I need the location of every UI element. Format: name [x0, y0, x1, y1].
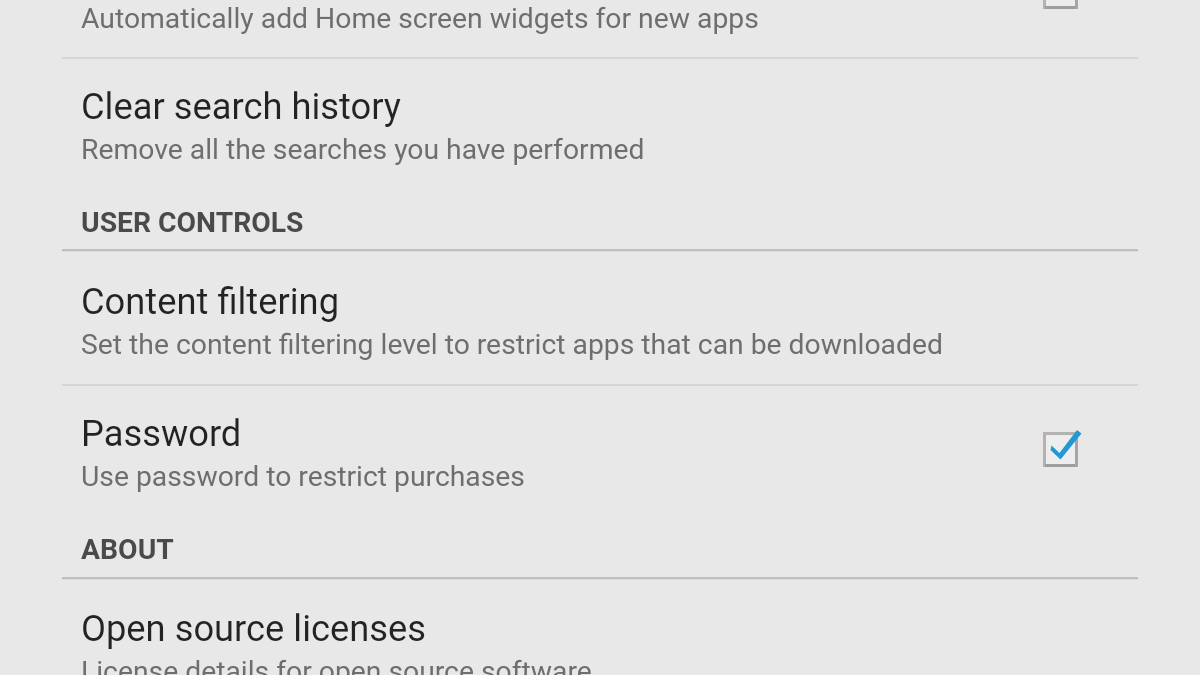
staticText: Set the content filtering level to restr…: [81, 328, 943, 361]
staticText: Open source licenses: [81, 607, 426, 650]
button[interactable]: Unchecked: [1029, 0, 1092, 23]
button[interactable]: [0, 0, 1200, 58]
button[interactable]: [0, 581, 1200, 675]
staticText: Clear search history: [81, 85, 401, 128]
button[interactable]: [0, 59, 1200, 189]
staticText: USER CONTROLS: [81, 206, 304, 239]
staticText: Automatically add Home screen widgets fo…: [81, 2, 759, 35]
staticText: Remove all the searches you have perform…: [81, 133, 645, 166]
staticText: License details for open source software: [81, 655, 592, 675]
button[interactable]: Checked: [1029, 418, 1092, 481]
staticText: Password: [81, 412, 242, 455]
staticText: ABOUT: [81, 533, 174, 566]
staticText: Content filtering: [81, 280, 340, 323]
button[interactable]: [0, 386, 1200, 516]
staticText: Use password to restrict purchases: [81, 460, 525, 493]
button[interactable]: [0, 254, 1200, 384]
